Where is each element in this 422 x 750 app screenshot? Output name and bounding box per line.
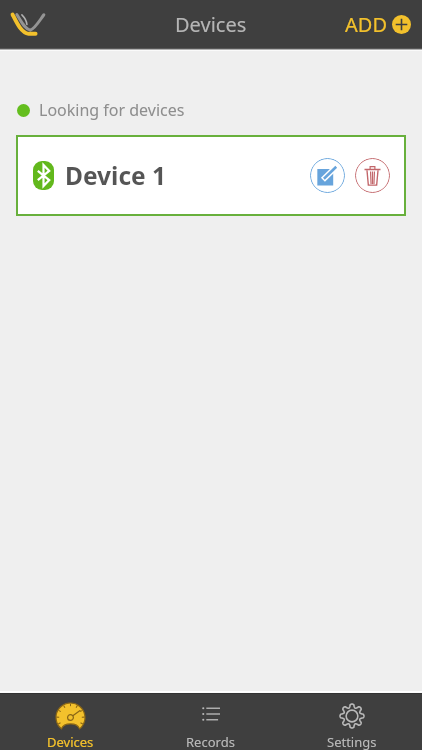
- button[interactable]: Devices: [0, 694, 140, 750]
- button[interactable]: Records: [140, 694, 281, 750]
- staticText: Devices: [47, 733, 94, 750]
- staticText: Settings: [327, 733, 377, 750]
- button[interactable]: ADD: [345, 11, 411, 38]
- button[interactable]: Delete device: [355, 158, 390, 193]
- staticText: Looking for devices: [39, 99, 185, 121]
- staticText: Device 1: [65, 159, 167, 192]
- staticText: Records: [186, 733, 235, 750]
- staticText: ADD: [345, 11, 387, 38]
- button[interactable]: Edit device: [310, 158, 345, 193]
- staticText: Devices: [175, 11, 247, 38]
- button[interactable]: Device 1: [16, 135, 406, 216]
- button[interactable]: Settings: [281, 694, 422, 750]
